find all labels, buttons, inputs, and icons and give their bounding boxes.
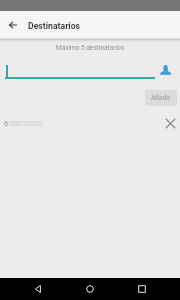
staticText: Máximo 5 destinatarios: [56, 44, 125, 52]
button[interactable]: Añadir: [145, 90, 177, 106]
staticText: Destinatarios: [28, 21, 80, 31]
staticText: Añadir: [151, 94, 171, 102]
staticText: 00000000: [9, 119, 43, 128]
button[interactable]: 6: [0, 112, 180, 134]
button[interactable]: Recent apps: [132, 279, 152, 299]
staticText: 6: [4, 119, 9, 128]
button[interactable]: Choose contact: [156, 61, 175, 80]
button[interactable]: Back: [5, 17, 21, 33]
button[interactable]: Home: [80, 279, 100, 299]
button[interactable]: Remove recipient: [161, 114, 179, 132]
button[interactable]: Back: [28, 279, 48, 299]
